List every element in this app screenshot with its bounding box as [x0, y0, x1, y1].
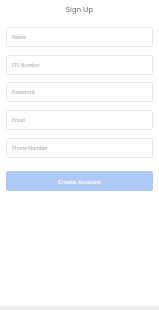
button[interactable]: ITS Number — [6, 55, 153, 75]
staticText: Name — [12, 34, 27, 41]
staticText: ITS Number — [12, 62, 41, 69]
staticText: Sign Up — [0, 4, 159, 14]
staticText: Email — [12, 117, 25, 124]
button[interactable]: Password — [6, 82, 153, 102]
staticText: Password — [12, 89, 35, 96]
button[interactable]: Email — [6, 110, 153, 130]
button[interactable]: Create Account — [6, 171, 153, 191]
staticText: Create Account — [58, 178, 101, 186]
button[interactable]: Name — [6, 27, 153, 47]
staticText: Phone Number — [12, 145, 48, 152]
button[interactable]: Phone Number — [6, 138, 153, 158]
